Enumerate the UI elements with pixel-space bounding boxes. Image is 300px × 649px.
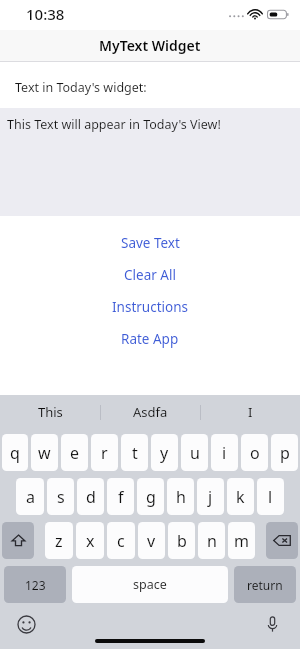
button[interactable]: Asdfa: [101, 395, 200, 429]
button[interactable]: Shift: [2, 522, 34, 559]
button[interactable]: j: [197, 478, 224, 515]
button[interactable]: s: [47, 478, 74, 515]
staticText: m: [234, 530, 249, 552]
staticText: l: [268, 486, 273, 508]
button[interactable]: r: [91, 434, 118, 471]
button[interactable]: o: [241, 434, 268, 471]
staticText: 123: [25, 577, 46, 593]
staticText: I: [248, 403, 253, 421]
staticText: b: [177, 530, 187, 552]
staticText: space: [133, 576, 167, 593]
staticText: y: [160, 442, 169, 464]
button[interactable]: This: [0, 395, 100, 429]
staticText: 10:38: [26, 4, 65, 24]
button[interactable]: Rate App: [0, 323, 300, 355]
staticText: This Text will appear in Today's View!: [7, 116, 221, 133]
button[interactable]: n: [198, 522, 225, 559]
button[interactable]: h: [167, 478, 194, 515]
staticText: r: [101, 442, 108, 464]
staticText: k: [236, 486, 245, 508]
staticText: i: [222, 442, 227, 464]
button[interactable]: z: [45, 522, 73, 559]
button[interactable]: m: [228, 522, 255, 559]
staticText: g: [146, 486, 156, 508]
button[interactable]: Backspace: [266, 522, 298, 559]
button[interactable]: u: [181, 434, 208, 471]
staticText: q: [10, 442, 20, 464]
staticText: Save Text: [121, 234, 180, 252]
button[interactable]: e: [61, 434, 88, 471]
button[interactable]: v: [138, 522, 165, 559]
staticText: x: [86, 530, 95, 552]
staticText: z: [55, 530, 63, 552]
button[interactable]: g: [137, 478, 164, 515]
staticText: a: [26, 486, 35, 508]
staticText: p: [280, 442, 290, 464]
button[interactable]: f: [107, 478, 134, 515]
staticText: f: [118, 486, 124, 508]
staticText: o: [250, 442, 260, 464]
button[interactable]: Emoji: [14, 612, 38, 636]
button[interactable]: l: [257, 478, 284, 515]
button[interactable]: x: [76, 522, 104, 559]
button[interactable]: i: [211, 434, 238, 471]
staticText: return: [247, 577, 283, 593]
staticText: n: [207, 530, 217, 552]
button[interactable]: Save Text: [0, 227, 300, 259]
button[interactable]: t: [121, 434, 148, 471]
button[interactable]: return: [234, 566, 296, 603]
button[interactable]: a: [16, 478, 44, 515]
staticText: Asdfa: [133, 403, 168, 421]
button[interactable]: b: [168, 522, 195, 559]
staticText: c: [117, 530, 125, 552]
staticText: MyText Widget: [99, 36, 201, 55]
button[interactable]: w: [31, 434, 58, 471]
staticText: Rate App: [121, 330, 179, 348]
button[interactable]: Dictation: [260, 612, 284, 636]
button[interactable]: space: [72, 566, 228, 603]
button[interactable]: This Text will appear in Today's View!: [0, 108, 300, 216]
button[interactable]: q: [2, 434, 28, 471]
staticText: u: [190, 442, 200, 464]
staticText: Instructions: [112, 298, 188, 316]
staticText: e: [70, 442, 80, 464]
staticText: d: [86, 486, 96, 508]
staticText: Clear All: [124, 266, 176, 284]
staticText: s: [57, 486, 65, 508]
staticText: t: [132, 442, 138, 464]
button[interactable]: Clear All: [0, 259, 300, 291]
staticText: This: [38, 403, 63, 421]
button[interactable]: I: [201, 395, 300, 429]
staticText: w: [38, 442, 51, 464]
staticText: v: [147, 530, 156, 552]
button[interactable]: 123: [4, 566, 66, 603]
button[interactable]: Instructions: [0, 291, 300, 323]
button[interactable]: k: [227, 478, 254, 515]
staticText: Text in Today's widget:: [15, 79, 147, 96]
button[interactable]: p: [271, 434, 298, 471]
button[interactable]: y: [151, 434, 178, 471]
staticText: j: [208, 486, 213, 508]
button[interactable]: d: [77, 478, 104, 515]
button[interactable]: c: [107, 522, 135, 559]
staticText: h: [176, 486, 186, 508]
